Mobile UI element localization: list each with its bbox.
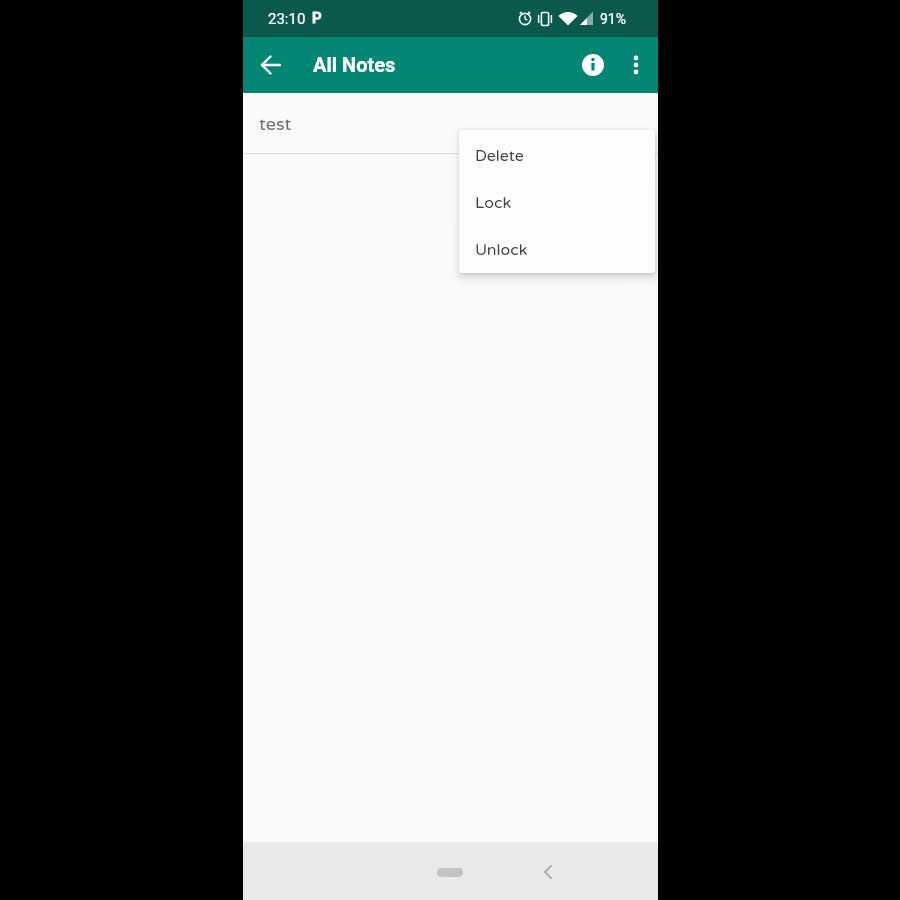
button[interactable]: Delete [459, 132, 655, 179]
button[interactable] [255, 49, 287, 81]
staticText: Unlock [475, 240, 528, 259]
staticText: Lock [475, 193, 512, 212]
button[interactable] [538, 862, 558, 882]
button[interactable]: Lock [459, 179, 655, 226]
staticText: 91% [600, 11, 626, 27]
staticText: P [312, 9, 322, 27]
button[interactable]: test [243, 93, 658, 154]
staticText: 23:10 [268, 10, 306, 28]
staticText: Delete [475, 146, 524, 165]
button[interactable] [620, 49, 652, 81]
button[interactable]: Unlock [459, 226, 655, 273]
staticText: test [259, 113, 292, 135]
staticText: All Notes [313, 53, 396, 76]
button[interactable] [437, 868, 463, 877]
button[interactable] [577, 49, 609, 81]
